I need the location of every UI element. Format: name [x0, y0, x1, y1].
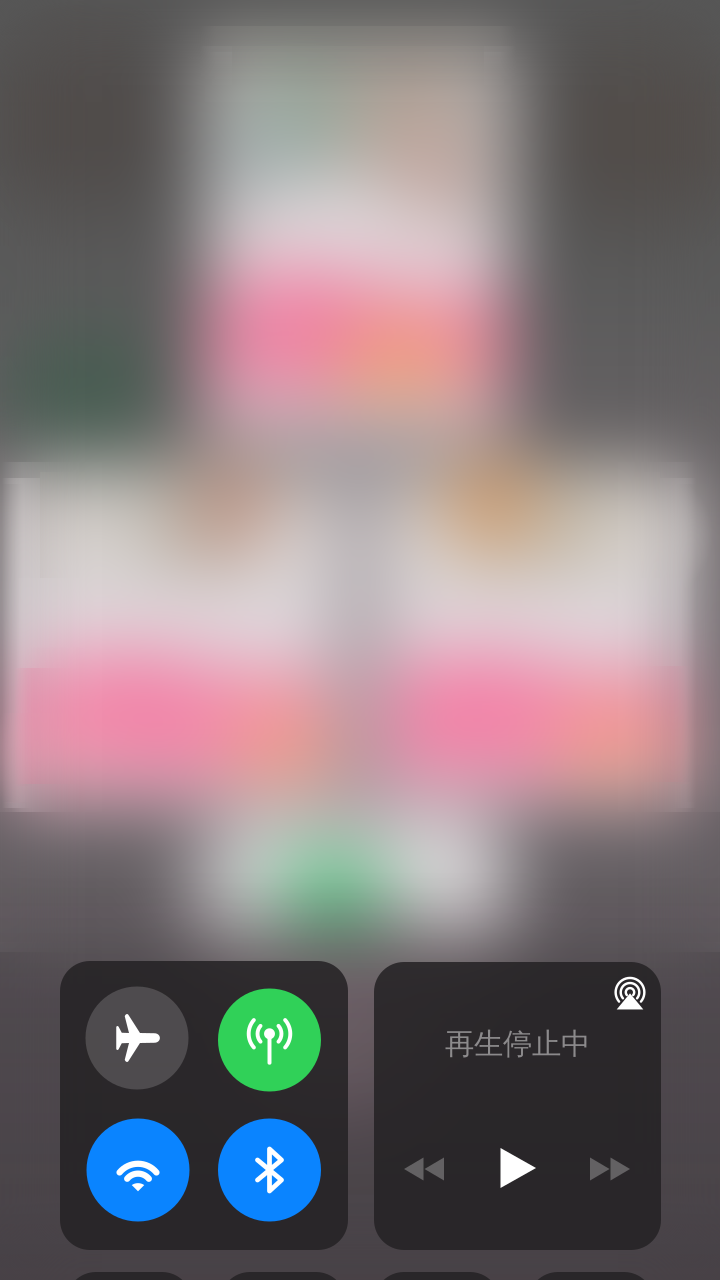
button[interactable]: Timer: [220, 1272, 346, 1280]
staticText: 再生停止中: [445, 1026, 590, 1062]
button[interactable]: Play: [480, 1130, 556, 1206]
button[interactable]: Calculator: [374, 1272, 500, 1280]
button[interactable]: Bluetooth: [218, 1118, 321, 1221]
button[interactable]: Flashlight: [66, 1272, 192, 1280]
button[interactable]: Rewind: [386, 1131, 462, 1207]
button[interactable]: Fast Forward: [572, 1131, 648, 1207]
button[interactable]: AirPlay: [606, 969, 654, 1017]
button[interactable]: Wi-Fi: [86, 1118, 189, 1221]
button[interactable]: Camera: [528, 1272, 654, 1280]
button[interactable]: Cellular Data: [218, 988, 321, 1091]
button[interactable]: Airplane Mode: [85, 986, 188, 1089]
